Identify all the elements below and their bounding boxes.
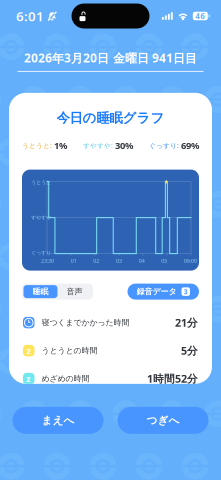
staticText: すやすや xyxy=(31,214,51,221)
staticText: z xyxy=(26,372,31,385)
staticText: 04 xyxy=(139,257,145,264)
button[interactable]: z xyxy=(9,337,212,365)
button[interactable]: 寝つくまでかかった時間 xyxy=(9,309,212,337)
staticText: 6:01 xyxy=(16,7,44,25)
staticText: うとうとの時間 xyxy=(41,346,97,355)
button[interactable]: 録音データ xyxy=(127,284,199,300)
staticText: 3 xyxy=(184,287,188,296)
staticText: 30% xyxy=(113,139,133,152)
staticText: 睡眠 xyxy=(32,287,48,296)
staticText: 05 xyxy=(161,257,167,264)
staticText: z xyxy=(26,344,31,357)
staticText: 03 xyxy=(116,257,122,264)
button[interactable]: まえへ xyxy=(12,407,103,434)
button[interactable]: z xyxy=(9,365,212,393)
staticText: 音声 xyxy=(66,287,82,296)
staticText: まえへ xyxy=(41,414,74,427)
staticText: 録音データ xyxy=(136,287,176,296)
staticText: うとうと: xyxy=(22,141,52,150)
staticText: 1時間52分 xyxy=(147,371,198,386)
staticText: 今日の睡眠グラフ xyxy=(56,110,164,126)
staticText: めざめの時間 xyxy=(41,374,89,383)
staticText: すやすや: xyxy=(83,141,113,150)
staticText: 23:30 xyxy=(41,257,54,264)
staticText: 69% xyxy=(179,139,199,152)
staticText: つぎへ xyxy=(146,414,179,427)
staticText: 5分 xyxy=(181,343,198,358)
staticText: 06:00 xyxy=(184,257,197,264)
staticText: 寝つくまでかかった時間 xyxy=(41,318,129,327)
staticText: うとうと xyxy=(31,179,51,186)
staticText: 46 xyxy=(195,11,205,21)
staticText: 01 xyxy=(71,257,77,264)
staticText: 02 xyxy=(93,257,99,264)
button[interactable]: 音声 xyxy=(57,285,91,298)
staticText: 1% xyxy=(52,139,67,152)
staticText: ぐっすり xyxy=(31,250,51,256)
button[interactable]: つぎへ xyxy=(117,407,208,434)
staticText: 2026年3月20日 金曜日 941日目 xyxy=(24,50,197,66)
staticText: 21分 xyxy=(175,315,198,330)
button[interactable]: 睡眠 xyxy=(23,285,57,298)
staticText: ぐっすり: xyxy=(149,141,179,150)
